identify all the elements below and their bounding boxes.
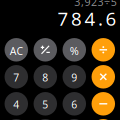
button[interactable]: Plus minus	[33, 38, 57, 61]
button[interactable]: 1	[5, 119, 28, 120]
button[interactable]: 9	[62, 65, 86, 88]
button[interactable]: 7	[5, 65, 28, 88]
button[interactable]: AC	[5, 38, 28, 61]
staticText: 9	[71, 70, 77, 84]
staticText: 4	[13, 97, 19, 111]
staticText: 8	[42, 70, 48, 84]
staticText: 7	[13, 70, 19, 84]
button[interactable]: Multiply	[91, 65, 115, 88]
button[interactable]: 4	[5, 92, 28, 115]
staticText: 6	[71, 97, 77, 111]
button[interactable]: 8	[33, 65, 57, 88]
staticText: AC	[10, 44, 24, 58]
button[interactable]: Minus	[91, 92, 115, 115]
button[interactable]: 5	[33, 92, 57, 115]
button[interactable]: Divide	[91, 38, 115, 61]
staticText: 784.6	[57, 6, 116, 31]
staticText: %	[70, 43, 79, 58]
button[interactable]: 2	[33, 119, 57, 120]
staticText: 5	[42, 97, 48, 111]
button[interactable]: 6	[62, 92, 86, 115]
button[interactable]: Plus	[91, 119, 115, 120]
staticText: 3,923÷5	[74, 0, 117, 9]
button[interactable]: %	[62, 38, 86, 61]
button[interactable]: 3	[62, 119, 86, 120]
